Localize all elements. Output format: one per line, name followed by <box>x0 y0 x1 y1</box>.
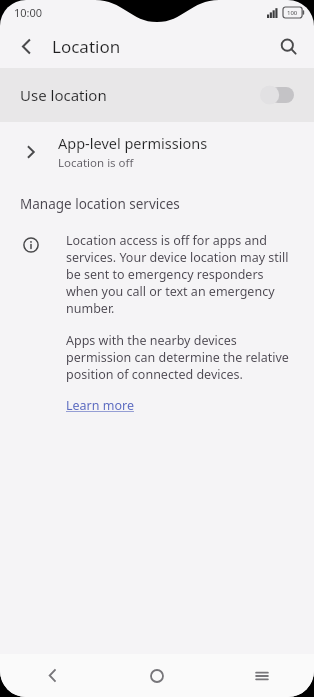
staticText: 100 <box>287 9 298 17</box>
button[interactable]: Recent apps <box>209 654 314 697</box>
button[interactable]: Learn more <box>66 397 134 414</box>
button[interactable]: Home <box>104 654 209 697</box>
staticText: Location is off <box>58 155 134 171</box>
button[interactable]: Back <box>0 654 104 697</box>
button[interactable]: Search <box>268 26 308 66</box>
button[interactable]: Use location <box>0 68 314 122</box>
staticText: Apps with the nearby devices permission … <box>66 332 294 383</box>
staticText: 10:00 <box>14 5 43 20</box>
staticText: Learn more <box>66 397 134 414</box>
staticText: Use location <box>20 85 107 105</box>
button[interactable]: Back <box>6 26 46 66</box>
staticText: Manage location services <box>20 195 180 213</box>
staticText: Location <box>52 35 121 58</box>
staticText: App-level permissions <box>58 133 208 153</box>
button[interactable]: App-level permissions <box>0 122 314 182</box>
staticText: Location access is off for apps and serv… <box>66 232 294 317</box>
